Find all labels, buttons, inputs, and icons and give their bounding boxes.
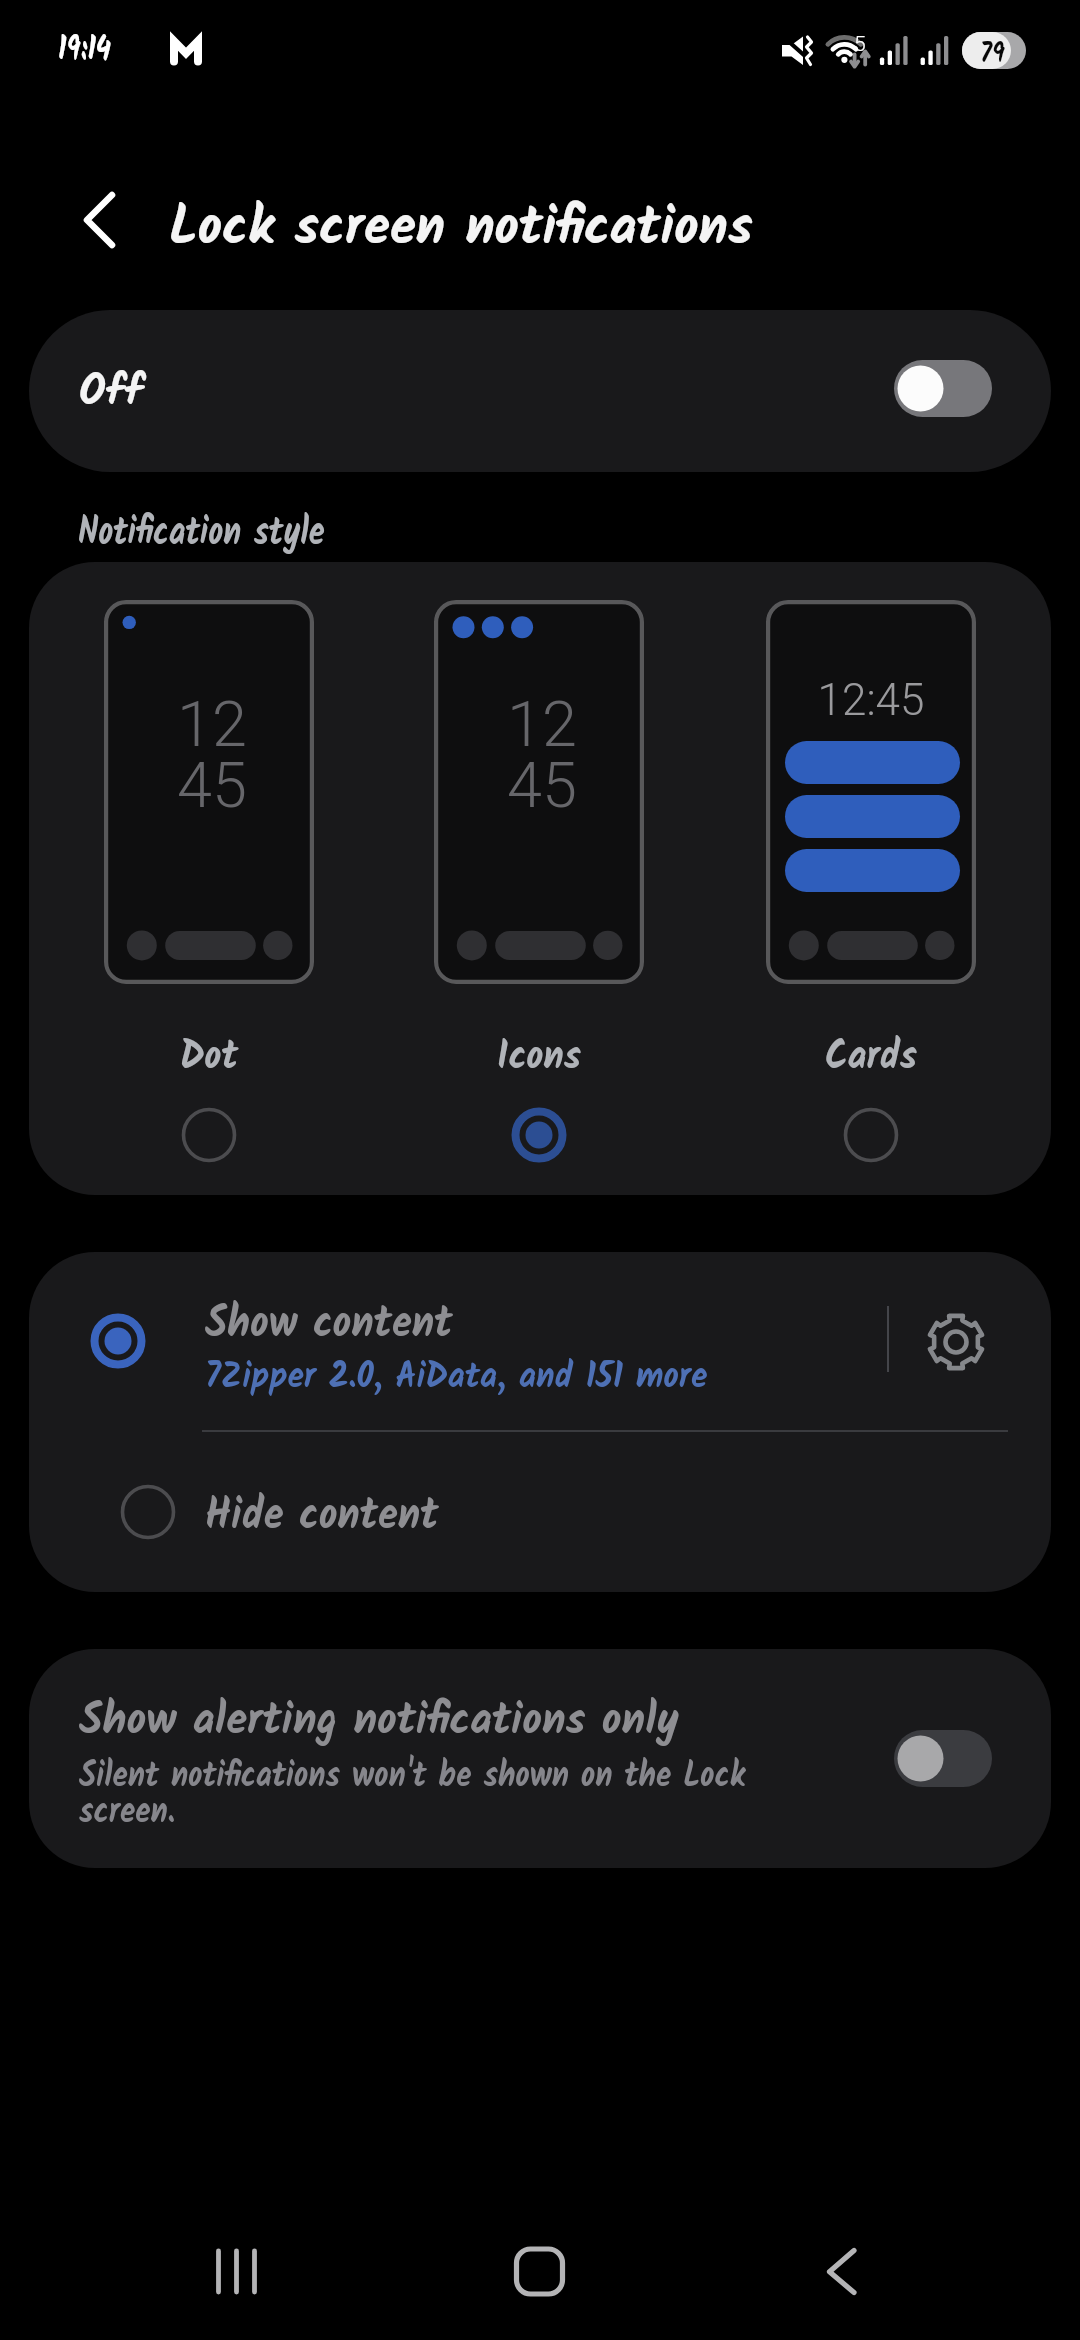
button[interactable]: Hide content [29,1432,1051,1592]
staticText: Cards [783,1024,959,1091]
staticText: Dot [121,1024,297,1091]
staticText: 12 45 [107,688,317,823]
button[interactable]: Icons [434,600,644,984]
button[interactable]: Cards [766,600,976,984]
staticText: 5 [854,32,866,57]
button[interactable]: Recent apps [176,2230,296,2314]
button[interactable]: Notification settings [892,1278,1020,1406]
button[interactable]: Off [29,310,1051,472]
button[interactable]: Show alerting notifications only [29,1649,1051,1868]
button[interactable]: Cards [831,1095,911,1175]
button[interactable]: Show content [29,1252,874,1430]
button[interactable]: Home [479,2230,599,2314]
staticText: 79 [980,31,1005,68]
button[interactable]: Icons [499,1095,579,1175]
staticText: 12:45 [766,674,976,726]
button[interactable]: Dot [169,1095,249,1175]
button[interactable]: Navigate up [44,163,132,277]
staticText: Hide content [205,1481,439,1553]
staticText: 12 45 [437,688,647,823]
staticText: Show alerting notifications only [79,1686,679,1758]
staticText: Lock screen notifications [169,187,753,273]
staticText: Off [79,359,144,428]
staticText: Notification style [78,501,325,565]
staticText: 19:14 [58,23,111,77]
staticText: Show content [205,1289,452,1361]
button[interactable]: Back [790,2230,910,2314]
staticText: 7Zipper 2.0, AiData, and 151 more [205,1350,708,1406]
staticText: Icons [451,1024,627,1091]
button[interactable]: Dot [104,600,314,984]
staticText: Silent notifications won't be shown on t… [79,1749,782,1841]
